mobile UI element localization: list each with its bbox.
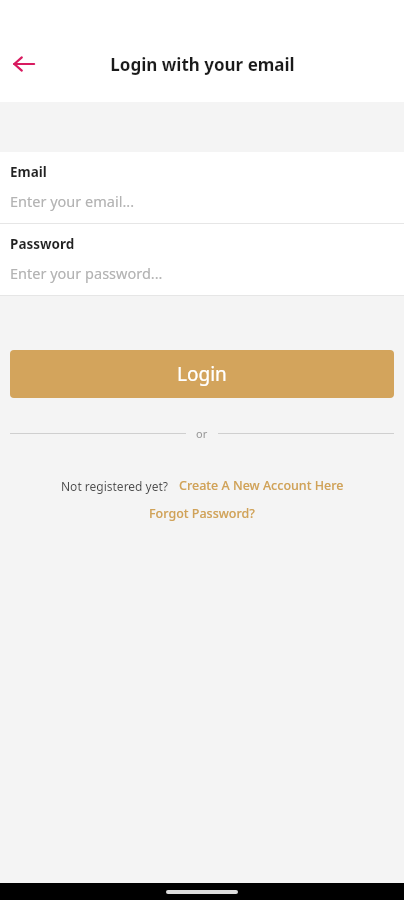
staticText: Forgot Password? bbox=[149, 505, 255, 522]
staticText: Login bbox=[177, 361, 227, 387]
staticText: or bbox=[196, 426, 208, 441]
staticText: Enter your email... bbox=[10, 191, 135, 211]
staticText: Login with your email bbox=[110, 53, 295, 76]
button[interactable]: Forgot Password? bbox=[149, 505, 255, 522]
staticText: Create A New Account Here bbox=[179, 477, 344, 494]
button[interactable]: Create A New Account Here bbox=[169, 477, 344, 494]
button[interactable]: Password bbox=[0, 224, 404, 295]
button[interactable]: Back bbox=[0, 40, 48, 88]
button[interactable]: Login bbox=[10, 350, 394, 398]
staticText: Not registered yet? bbox=[61, 478, 169, 494]
button[interactable]: Email bbox=[0, 152, 404, 223]
staticText: Password bbox=[10, 235, 75, 253]
staticText: Enter your password... bbox=[10, 263, 163, 283]
staticText: Email bbox=[10, 163, 47, 181]
